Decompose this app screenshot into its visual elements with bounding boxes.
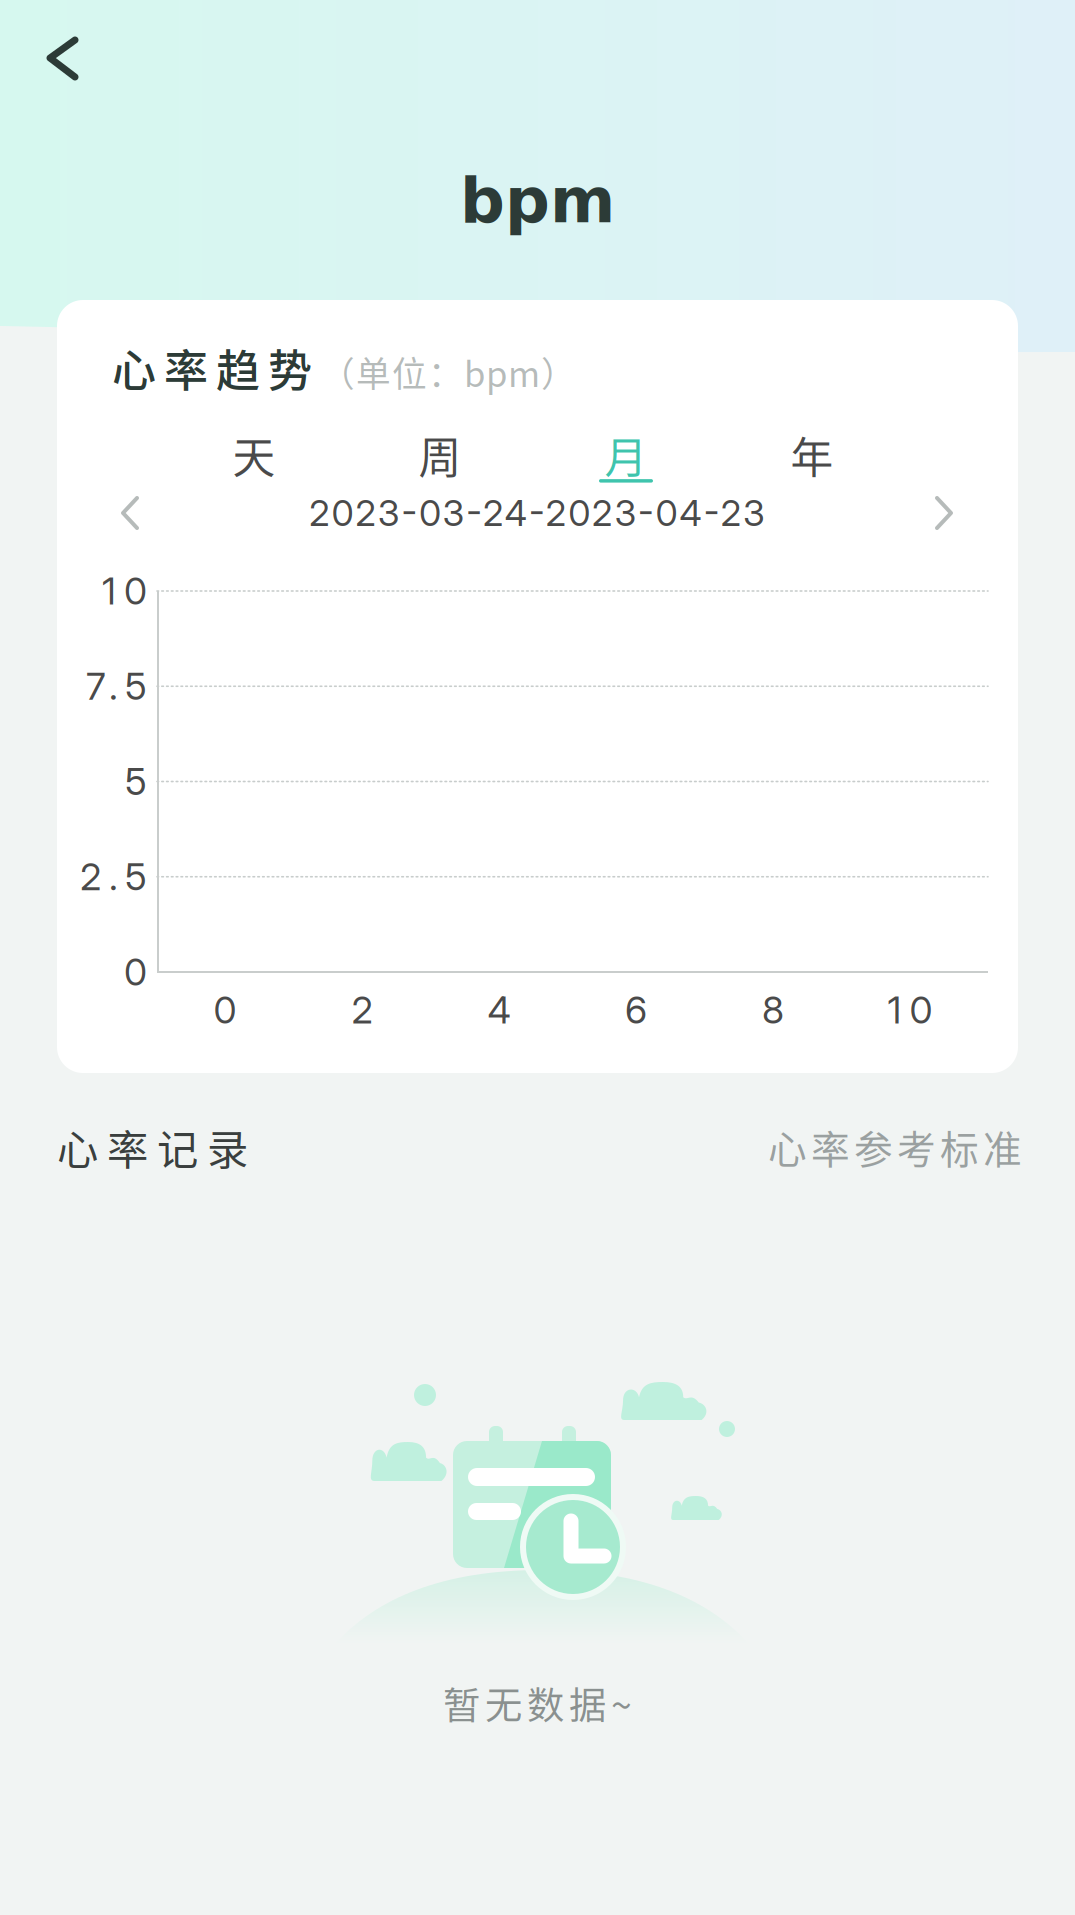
button[interactable]: Previous period <box>112 490 158 536</box>
staticText: 周 <box>418 424 461 486</box>
button[interactable]: 天 <box>194 423 314 485</box>
staticText: 8 <box>762 987 784 1033</box>
staticText: 0 <box>213 987 236 1033</box>
staticText: 心率趋势 <box>112 336 312 400</box>
staticText: 10 <box>102 568 147 614</box>
staticText: 心率参考标准 <box>768 1119 1022 1175</box>
button[interactable]: 月 <box>566 423 686 485</box>
staticText: 6 <box>625 987 647 1033</box>
staticText: 2023-03-24-2023-04-23 <box>309 491 765 535</box>
staticText: 2.5 <box>80 854 147 899</box>
staticText: 暂无数据~ <box>443 1676 632 1730</box>
staticText: 7.5 <box>86 664 147 709</box>
staticText: bpm <box>460 164 615 237</box>
staticText: （单位：bpm） <box>320 347 576 397</box>
button[interactable]: 心率参考标准 <box>768 1119 1022 1175</box>
staticText: 5 <box>125 759 147 804</box>
button[interactable]: 周 <box>380 423 500 485</box>
button[interactable]: Back <box>26 18 118 98</box>
staticText: 4 <box>487 987 510 1033</box>
staticText: 心率记录 <box>57 1117 248 1177</box>
staticText: 2 <box>351 987 372 1033</box>
staticText: 10 <box>887 987 932 1033</box>
staticText: 0 <box>124 949 147 995</box>
staticText: 天 <box>232 424 275 486</box>
staticText: 年 <box>790 424 833 486</box>
staticText: 月 <box>604 424 647 486</box>
button[interactable]: Next period <box>916 490 962 536</box>
button[interactable]: 年 <box>752 423 872 485</box>
